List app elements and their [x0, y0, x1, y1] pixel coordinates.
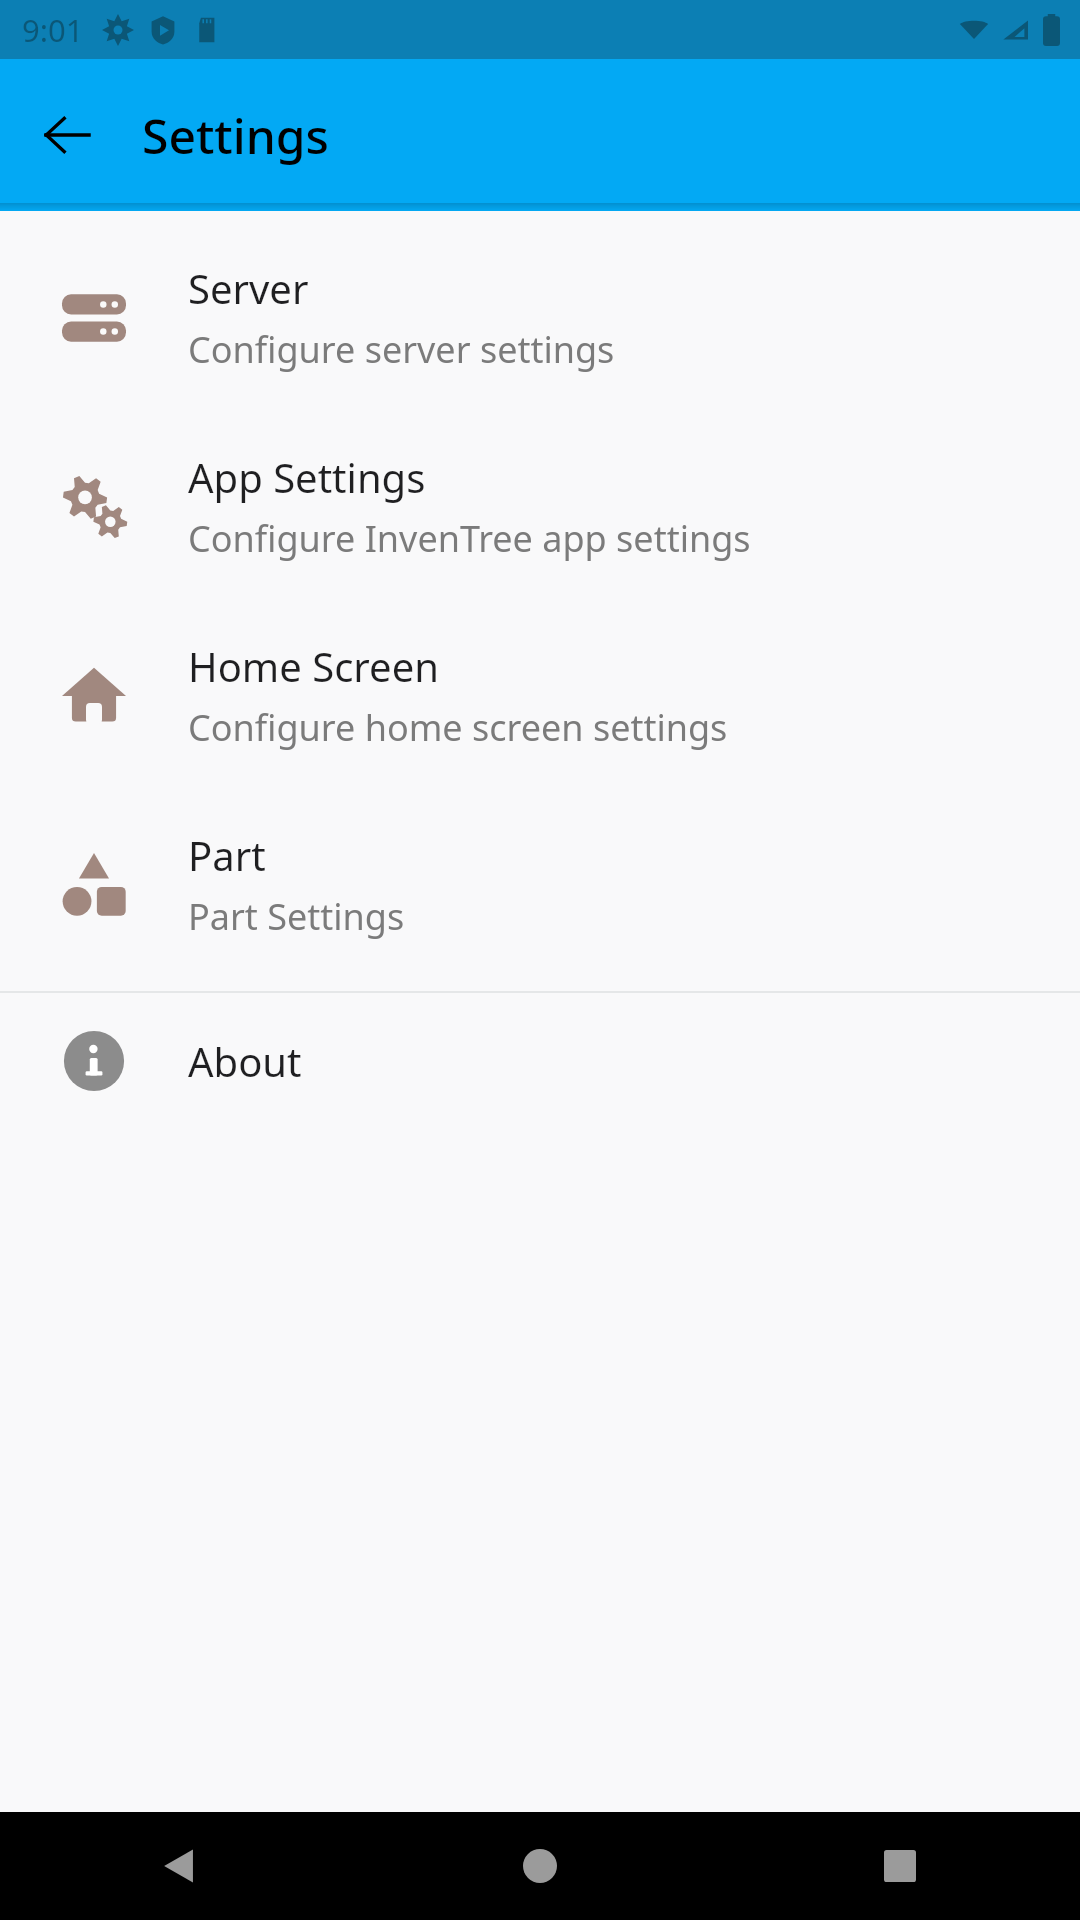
- staticText: About: [188, 1034, 302, 1088]
- staticText: Configure home screen settings: [188, 703, 728, 752]
- staticText: Configure InvenTree app settings: [188, 514, 751, 563]
- button[interactable]: Back: [0, 1812, 360, 1920]
- staticText: Home Screen: [188, 639, 439, 693]
- button[interactable]: Recent apps: [720, 1812, 1080, 1920]
- button[interactable]: Part: [0, 790, 1080, 979]
- staticText: Server: [188, 261, 309, 315]
- button[interactable]: About: [0, 993, 1080, 1129]
- staticText: App Settings: [188, 450, 426, 504]
- staticText: Configure server settings: [188, 325, 615, 374]
- button[interactable]: Home Screen: [0, 601, 1080, 790]
- staticText: Part Settings: [188, 892, 405, 941]
- button[interactable]: Server: [0, 223, 1080, 412]
- button[interactable]: Home: [360, 1812, 720, 1920]
- button[interactable]: App Settings: [0, 412, 1080, 601]
- staticText: Settings: [142, 103, 329, 168]
- staticText: 9:01: [22, 9, 84, 51]
- button[interactable]: Back: [30, 98, 104, 172]
- staticText: Part: [188, 828, 266, 882]
